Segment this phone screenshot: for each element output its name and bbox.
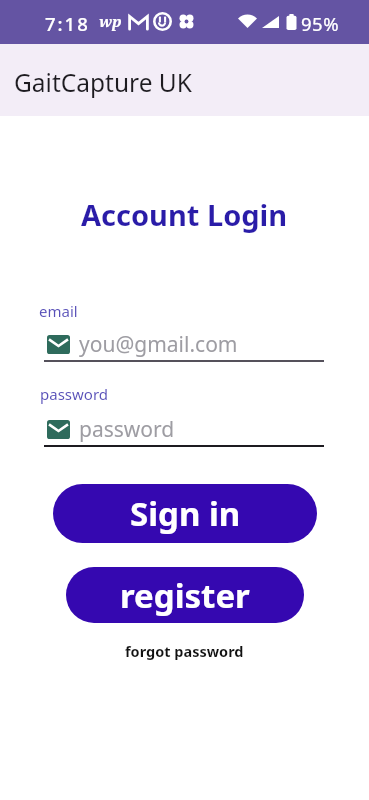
staticText: Account Login [81,195,288,234]
staticText: password [40,384,108,404]
staticText: 7:18 [45,11,90,36]
button[interactable]: register [66,567,304,623]
staticText: 95% [301,11,340,36]
staticText: wp [99,11,122,31]
button[interactable]: forgot password [125,641,244,661]
button[interactable]: password [40,411,328,451]
button[interactable]: Sign in [53,484,317,543]
button[interactable]: you@gmail.com [40,326,328,366]
staticText: Sign in [130,491,241,536]
staticText: you@gmail.com [79,330,238,359]
staticText: GaitCapture UK [14,66,192,99]
staticText: register [120,573,250,618]
staticText: password [79,415,175,444]
staticText: email [39,301,78,321]
